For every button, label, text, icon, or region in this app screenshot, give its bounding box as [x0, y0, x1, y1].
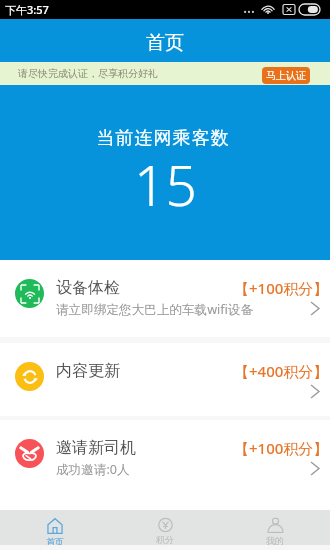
other: Home [47, 518, 63, 534]
staticText: 我的 [266, 535, 284, 545]
other: Profile [267, 518, 284, 533]
staticText: 设备体检 [56, 278, 120, 298]
staticText: 请立即绑定您大巴上的车载wifi设备 [56, 301, 254, 318]
staticText: 【+400积分】 [234, 361, 329, 381]
staticText: 15 [134, 147, 197, 222]
staticText: 内容更新 [56, 361, 120, 381]
staticText: 【+100积分】 [234, 438, 329, 458]
staticText: 邀请新司机 [56, 438, 136, 458]
staticText: 成功邀请:0人 [56, 461, 130, 478]
staticText: 首页 [146, 31, 184, 55]
button[interactable]: 设备体检 [0, 260, 330, 337]
staticText: 积分 [156, 534, 174, 545]
staticText: 【+100积分】 [234, 278, 329, 298]
other: Points [157, 518, 174, 532]
staticText: 当前连网乘客数 [96, 127, 229, 150]
button[interactable]: 马上认证 [262, 67, 310, 84]
button[interactable]: 邀请新司机 [0, 420, 330, 494]
button[interactable]: Home [0, 510, 110, 545]
button[interactable]: 内容更新 [0, 343, 330, 416]
staticText: 下午3:57 [5, 2, 49, 17]
staticText: 首页 [46, 536, 64, 545]
button[interactable]: Points [110, 510, 220, 545]
staticText: 马上认证 [266, 69, 306, 82]
button[interactable]: Profile [220, 510, 330, 545]
staticText: 请尽快完成认证，尽享积分好礼 [18, 67, 158, 80]
